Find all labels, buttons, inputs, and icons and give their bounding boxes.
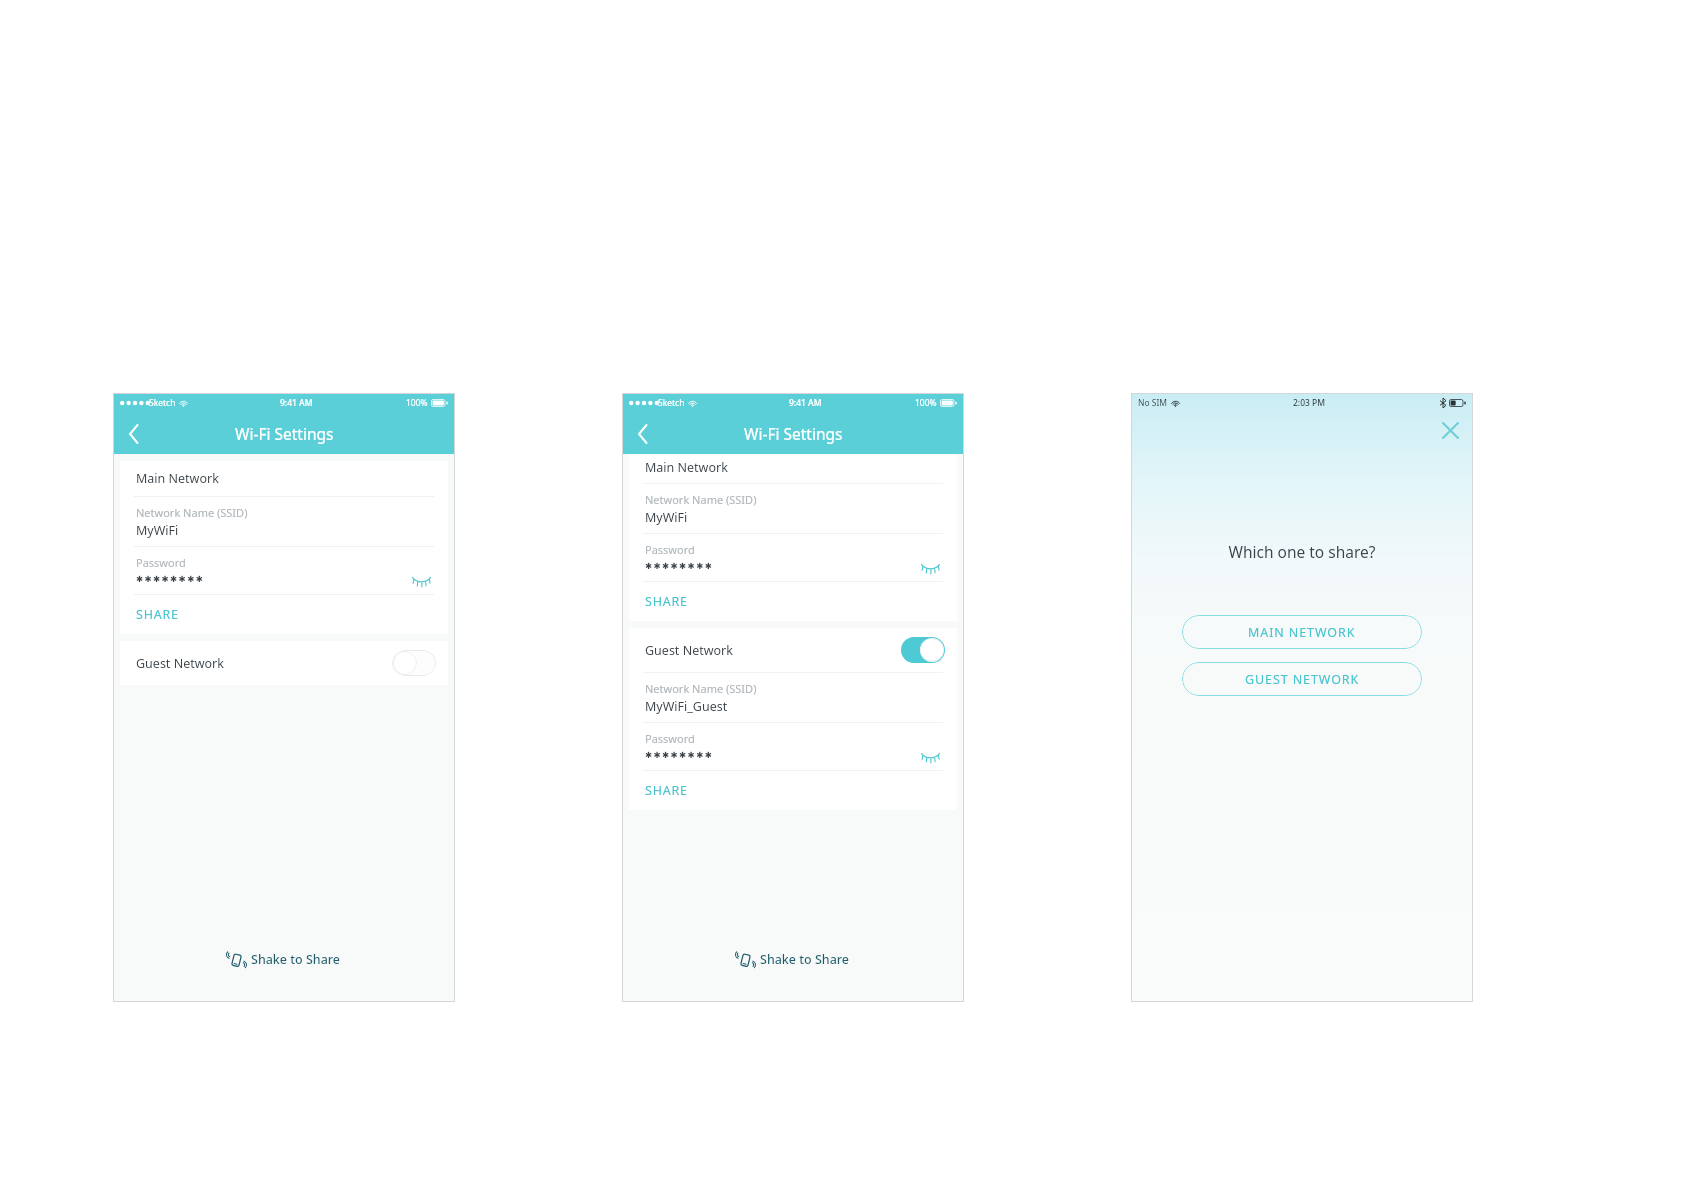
button[interactable]: SHARE — [120, 595, 448, 634]
staticText: 100% — [915, 397, 937, 409]
staticText: Guest Network — [645, 642, 733, 659]
staticText: ✱✱✱✱✱✱✱✱ — [645, 561, 714, 571]
staticText: Wi-Fi Settings — [744, 423, 843, 444]
button[interactable]: Shake to Share — [222, 945, 346, 974]
staticText: 9:41 AM — [280, 397, 313, 409]
button[interactable]: Guest Network — [120, 641, 448, 685]
staticText: Network Name (SSID) — [645, 492, 757, 507]
staticText: Which one to share? — [1131, 541, 1473, 562]
button[interactable]: Back — [625, 416, 661, 452]
button[interactable]: Close — [1435, 415, 1465, 445]
button[interactable]: GUEST NETWORK — [1182, 662, 1422, 696]
button[interactable]: Guest network toggle — [900, 636, 946, 664]
staticText: Main Network — [645, 459, 728, 476]
button[interactable]: Password — [120, 547, 448, 594]
staticText: ✱✱✱✱✱✱✱✱ — [136, 574, 205, 584]
staticText: SHARE — [645, 782, 688, 799]
staticText: Password — [645, 542, 695, 557]
button[interactable]: SHARE — [629, 771, 957, 810]
button[interactable]: Back — [116, 416, 152, 452]
staticText: No SIM — [1138, 397, 1168, 409]
button[interactable]: Guest Network — [629, 628, 957, 672]
staticText: Wi-Fi Settings — [235, 423, 334, 444]
button[interactable]: Show password — [408, 571, 434, 587]
staticText: GUEST NETWORK — [1245, 671, 1360, 688]
button[interactable]: Main Network — [120, 461, 448, 496]
staticText: 100% — [406, 397, 428, 409]
staticText: Network Name (SSID) — [645, 681, 757, 696]
staticText: Password — [136, 555, 186, 570]
button[interactable]: Network Name (SSID) — [120, 497, 448, 546]
staticText: Sketch — [658, 397, 685, 409]
staticText: Shake to Share — [251, 951, 341, 968]
button[interactable]: SHARE — [629, 582, 957, 621]
staticText: 2:03 PM — [1293, 397, 1326, 409]
button[interactable]: Network Name (SSID) — [629, 484, 957, 533]
button[interactable]: Main Network — [629, 454, 957, 483]
button[interactable]: MAIN NETWORK — [1182, 615, 1422, 649]
staticText: MyWiFi — [645, 509, 688, 526]
button[interactable]: Show password — [917, 558, 943, 574]
button[interactable]: Show password — [917, 747, 943, 763]
staticText: Network Name (SSID) — [136, 505, 248, 520]
staticText: MyWiFi_Guest — [645, 698, 728, 715]
button[interactable]: Password — [629, 723, 957, 770]
staticText: Password — [645, 731, 695, 746]
button[interactable]: Password — [629, 534, 957, 581]
staticText: SHARE — [136, 606, 179, 623]
staticText: MyWiFi — [136, 522, 179, 539]
staticText: Main Network — [136, 470, 219, 487]
button[interactable]: Guest network toggle — [391, 649, 437, 677]
staticText: 9:41 AM — [789, 397, 822, 409]
staticText: Guest Network — [136, 655, 224, 672]
staticText: ✱✱✱✱✱✱✱✱ — [645, 750, 714, 760]
staticText: Sketch — [149, 397, 176, 409]
staticText: MAIN NETWORK — [1248, 624, 1356, 641]
staticText: SHARE — [645, 593, 688, 610]
button[interactable]: Shake to Share — [731, 945, 855, 974]
staticText: Shake to Share — [760, 951, 850, 968]
button[interactable]: Network Name (SSID) — [629, 673, 957, 722]
